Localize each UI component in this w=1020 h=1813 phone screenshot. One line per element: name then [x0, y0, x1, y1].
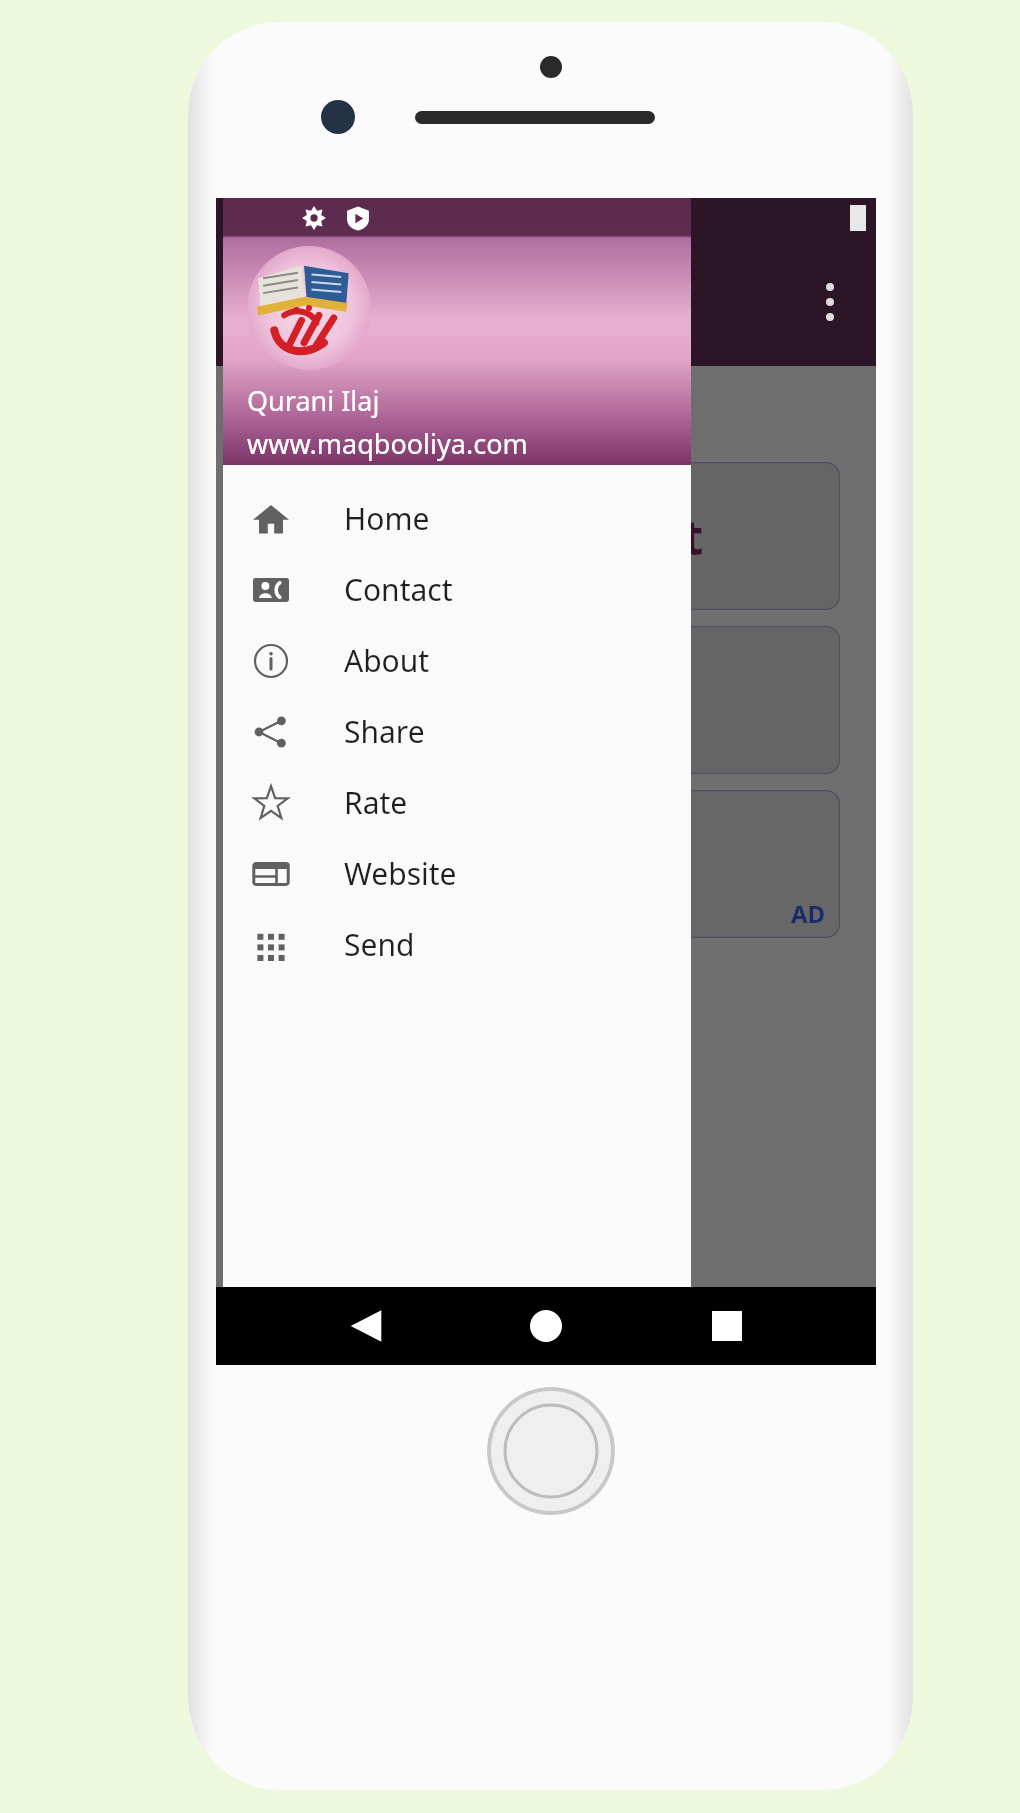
staticText: Share [344, 711, 425, 752]
staticText: www.maqbooliya.com [247, 425, 528, 462]
button[interactable]: More options [810, 272, 850, 332]
button[interactable]: Qurani Ayaat [252, 462, 840, 610]
button[interactable]: Back [335, 1295, 397, 1357]
button[interactable]: Qurani Ilaj [252, 626, 840, 774]
button[interactable]: Send [223, 909, 691, 980]
button[interactable]: Contact [223, 554, 691, 625]
staticText: Contact [344, 569, 453, 610]
button[interactable]: Home [515, 1295, 577, 1357]
button[interactable]: About [223, 625, 691, 696]
staticText: Home [344, 498, 430, 539]
staticText: AD [791, 897, 826, 930]
button[interactable]: Rate [223, 767, 691, 838]
staticText: Rate [344, 782, 408, 823]
button[interactable]: App logo [247, 246, 371, 370]
button[interactable]: APPS [252, 790, 840, 938]
staticText: Qurani Ilaj [247, 382, 380, 419]
button[interactable]: Share [223, 696, 691, 767]
staticText: Send [344, 924, 415, 965]
staticText: Qurani Ayaat [388, 504, 704, 569]
other: Home button [487, 1387, 615, 1515]
staticText: Qurani Ilaj [420, 668, 673, 733]
button[interactable]: Recent apps [696, 1295, 758, 1357]
staticText: Website [344, 853, 457, 894]
staticText: About [344, 640, 430, 681]
button[interactable]: Website [223, 838, 691, 909]
button[interactable]: Home [223, 483, 691, 554]
